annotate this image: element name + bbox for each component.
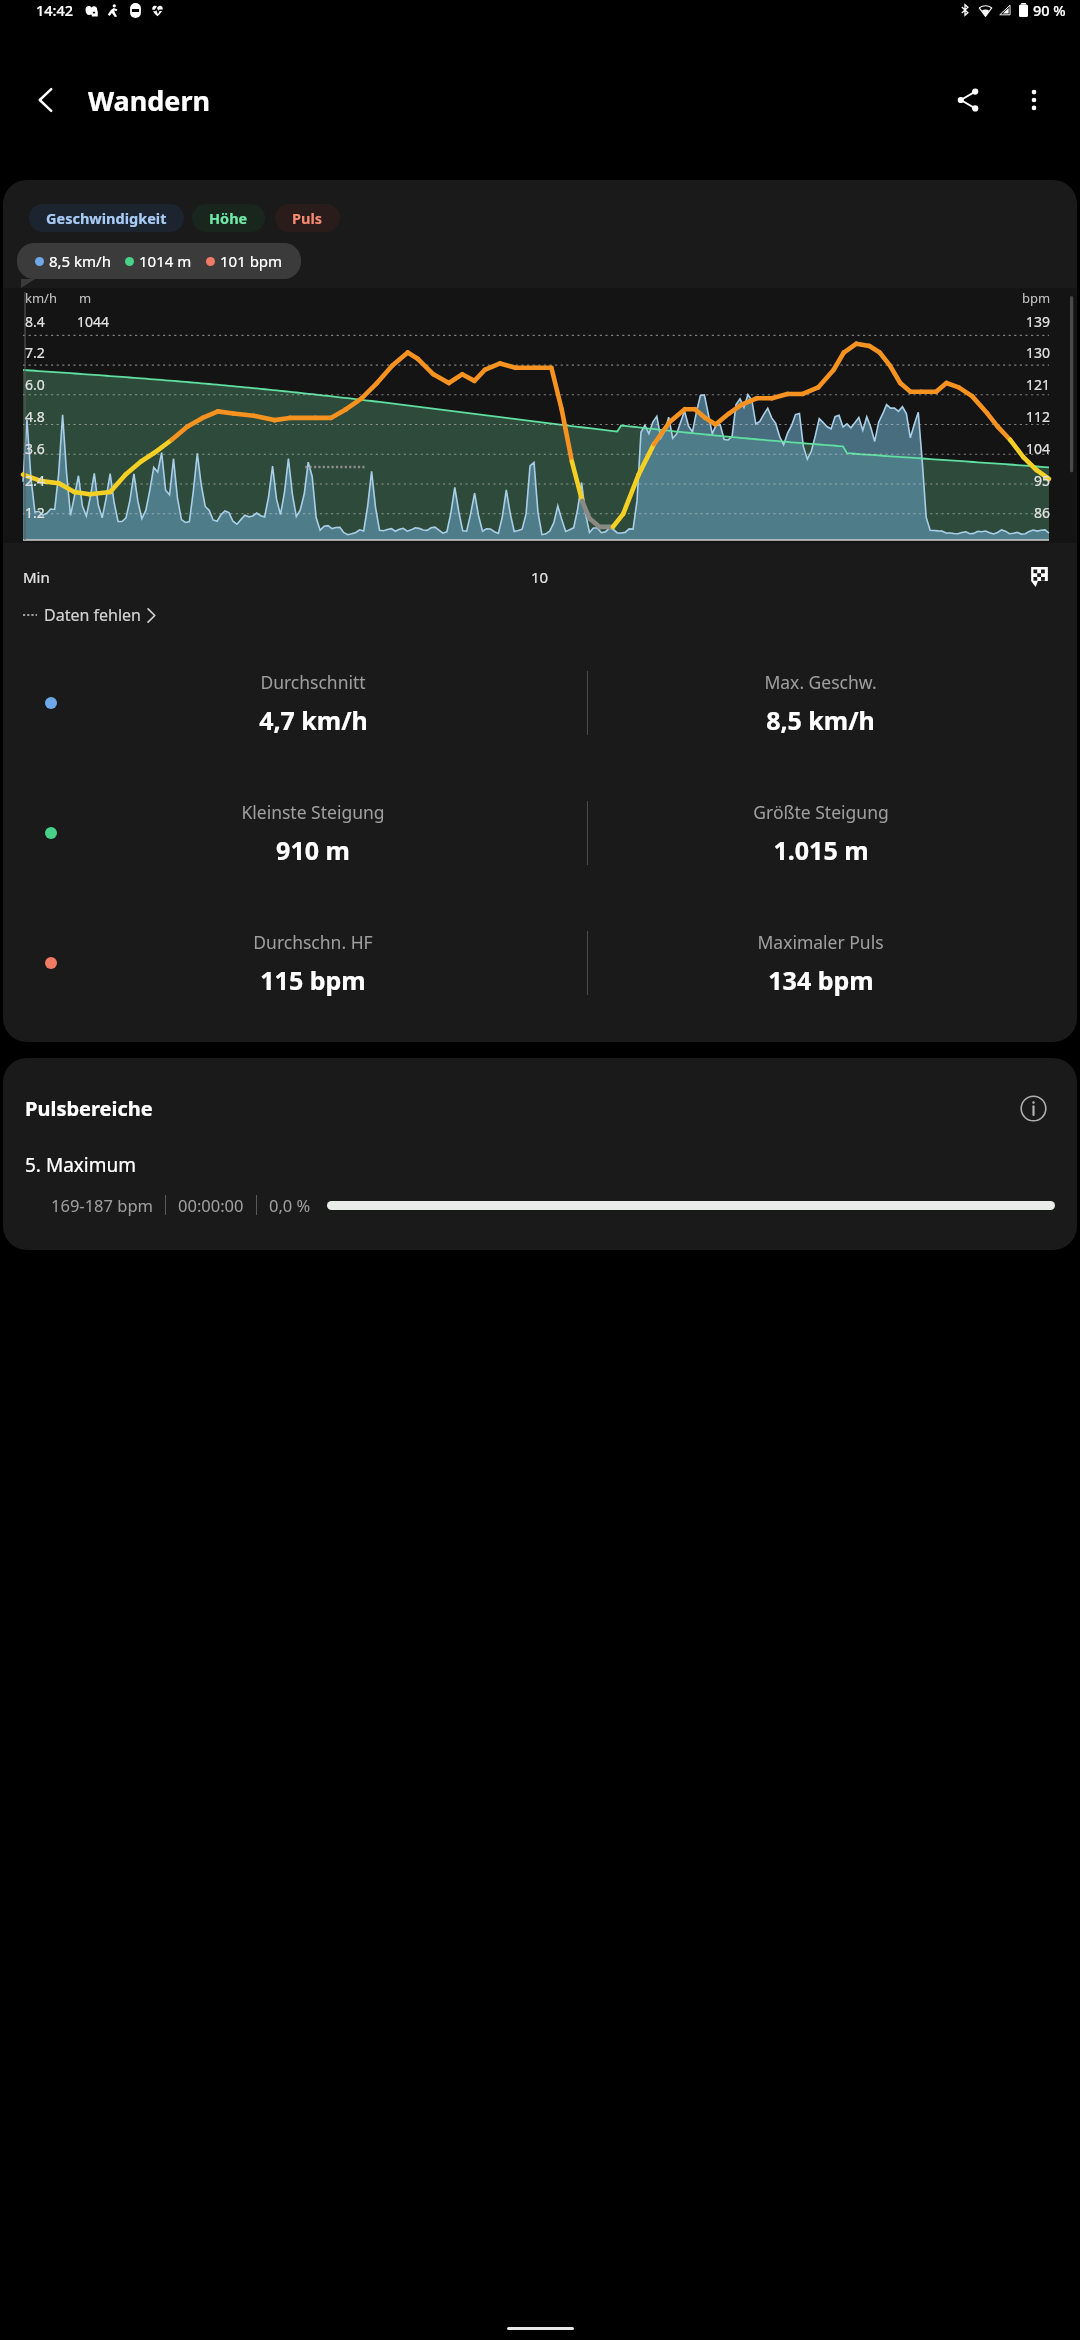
staticText: 6.0	[25, 375, 45, 394]
staticText: 115 bpm	[260, 963, 366, 997]
staticText: Höhe	[209, 208, 248, 228]
staticText: 00:00:00	[178, 1194, 244, 1216]
staticText: 169-187 bpm	[51, 1194, 153, 1216]
staticText: 14:42	[36, 0, 74, 20]
staticText: m	[79, 289, 92, 307]
staticText: 8,5 km/h	[49, 251, 111, 271]
staticText: 10	[531, 567, 549, 587]
staticText: Wandern	[88, 82, 211, 119]
button[interactable]: Information	[1011, 1086, 1055, 1130]
staticText: 134 bpm	[768, 963, 874, 997]
staticText: 7.2	[25, 343, 45, 362]
staticText: 112	[1026, 407, 1051, 426]
button[interactable]: Puls	[275, 204, 340, 232]
staticText: 1.015 m	[773, 833, 869, 867]
staticText: Min	[23, 567, 50, 587]
button[interactable]: Share	[940, 72, 996, 128]
staticText: 139	[1026, 312, 1051, 331]
staticText: Kleinste Steigung	[241, 800, 385, 824]
button[interactable]: Durchschnitt	[3, 648, 1077, 758]
staticText: Durchschn. HF	[253, 930, 373, 954]
staticText: 0,0 %	[269, 1194, 311, 1216]
button[interactable]: Durchschn. HF	[3, 908, 1077, 1018]
staticText: 1014 m	[139, 251, 192, 271]
staticText: 86	[1034, 503, 1051, 522]
staticText: Durchschnitt	[260, 670, 366, 694]
staticText: 3.6	[25, 439, 45, 458]
staticText: 910 m	[276, 833, 350, 867]
staticText: Puls	[292, 208, 323, 228]
staticText: bpm	[1022, 289, 1051, 307]
button[interactable]: Daten fehlen	[23, 604, 156, 626]
staticText: 1.2	[25, 503, 45, 522]
staticText: 2.4	[25, 471, 45, 490]
staticText: 101 bpm	[220, 251, 283, 271]
staticText: Maximaler Puls	[757, 930, 884, 954]
staticText: Daten fehlen	[44, 604, 141, 626]
button[interactable]: Geschwindigkeit	[29, 204, 184, 232]
staticText: 5. Maximum	[25, 1152, 137, 1178]
staticText: 8,5 km/h	[766, 703, 875, 737]
staticText: Max. Geschw.	[764, 670, 877, 694]
staticText: Geschwindigkeit	[46, 208, 167, 228]
staticText: 90 %	[1033, 0, 1066, 20]
staticText: 1044	[77, 312, 110, 331]
staticText: 121	[1026, 375, 1051, 394]
staticText: 4.8	[25, 407, 45, 426]
button[interactable]: Höhe	[192, 204, 265, 232]
staticText: 95	[1034, 471, 1051, 490]
staticText: km/h	[25, 289, 57, 307]
button[interactable]: More options	[1006, 72, 1062, 128]
button[interactable]: Kleinste Steigung	[3, 778, 1077, 888]
staticText: 104	[1026, 439, 1051, 458]
staticText: Pulsbereiche	[25, 1095, 153, 1122]
staticText: 130	[1026, 343, 1051, 362]
staticText: 4,7 km/h	[259, 703, 368, 737]
staticText: Größte Steigung	[753, 800, 889, 824]
button[interactable]: Back	[18, 72, 74, 128]
staticText: 8.4	[25, 312, 45, 331]
